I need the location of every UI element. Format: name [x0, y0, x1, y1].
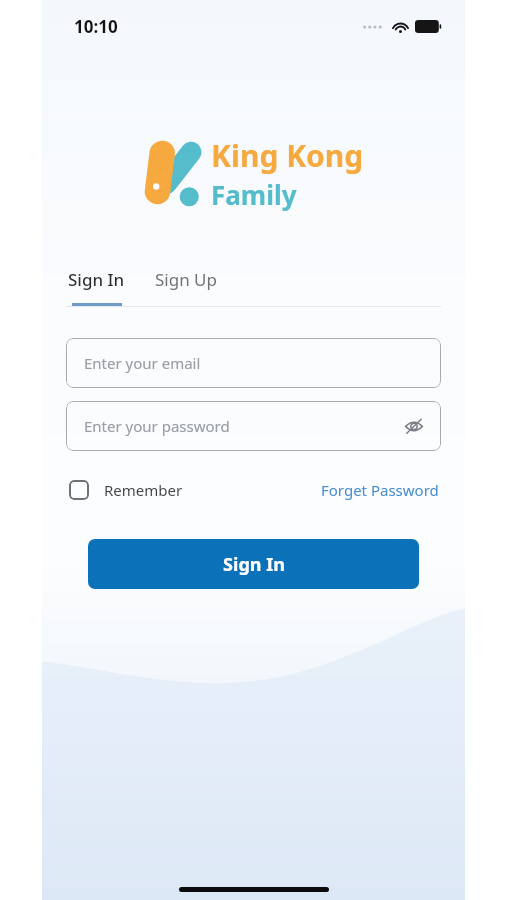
staticText: 10:10 — [74, 15, 118, 38]
staticText: Sign In — [68, 268, 125, 291]
staticText: Sign In — [223, 552, 285, 577]
staticText: Remember — [104, 480, 183, 500]
staticText: Family — [211, 177, 297, 212]
button[interactable]: Sign Up — [153, 266, 219, 306]
button[interactable]: Forget Password — [319, 476, 441, 504]
staticText: King Kong — [211, 135, 364, 176]
button[interactable]: Sign In — [66, 266, 127, 306]
staticText: Enter your email — [84, 353, 201, 373]
button[interactable]: Show password — [401, 413, 427, 439]
staticText: Sign Up — [155, 268, 217, 291]
button[interactable]: Sign In — [88, 539, 419, 589]
button[interactable]: Remember — [66, 476, 183, 504]
staticText: Enter your password — [84, 416, 230, 436]
button[interactable]: Enter your email — [66, 338, 441, 388]
staticText: Forget Password — [321, 480, 439, 500]
button[interactable]: Enter your password — [66, 401, 441, 451]
